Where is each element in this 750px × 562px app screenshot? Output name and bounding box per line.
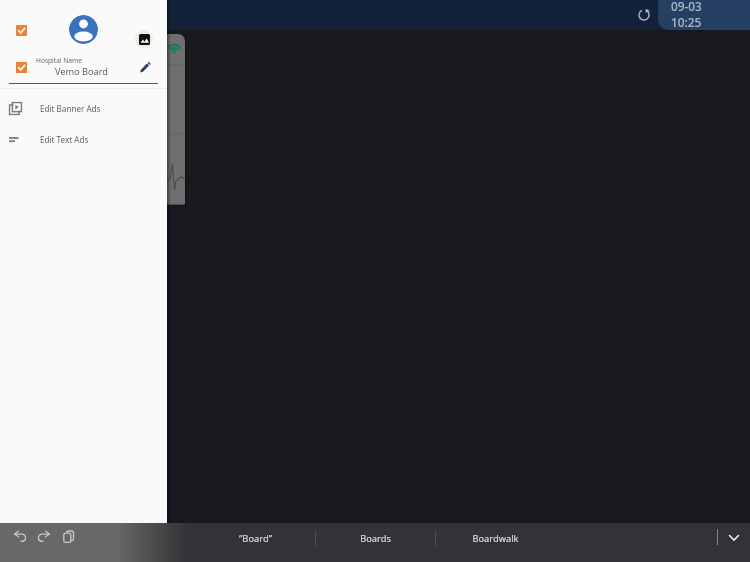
- button[interactable]: Collapse keyboard: [718, 525, 750, 549]
- button[interactable]: Edit hospital name: [137, 59, 153, 75]
- staticText: “Board”: [239, 532, 272, 545]
- button[interactable]: Select hospital name: [16, 62, 27, 73]
- staticText: Vemo Board: [36, 65, 108, 78]
- staticText: 09-03: [671, 0, 702, 14]
- staticText: Hospital Name: [36, 56, 82, 65]
- button[interactable]: Refresh: [634, 5, 654, 25]
- button[interactable]: Undo: [8, 525, 32, 547]
- staticText: 10:25: [671, 14, 702, 28]
- button[interactable]: “Board”: [195, 525, 315, 551]
- button[interactable]: Clipboard: [56, 525, 80, 547]
- button[interactable]: Edit Text Ads: [0, 129, 167, 149]
- button[interactable]: Account profile: [69, 15, 98, 44]
- button[interactable]: Date and time: [658, 0, 750, 30]
- button[interactable]: Edit Banner Ads: [0, 98, 167, 118]
- staticText: Boardwalk: [472, 532, 519, 545]
- button[interactable]: Change logo image: [135, 30, 153, 48]
- staticText: Edit Text Ads: [40, 134, 89, 145]
- button[interactable]: Redo: [32, 525, 56, 547]
- staticText: Boards: [360, 532, 391, 545]
- button[interactable]: Boards: [316, 525, 435, 551]
- button[interactable]: Boardwalk: [436, 525, 555, 551]
- button[interactable]: Select logo: [16, 25, 27, 36]
- staticText: Edit Banner Ads: [40, 103, 101, 114]
